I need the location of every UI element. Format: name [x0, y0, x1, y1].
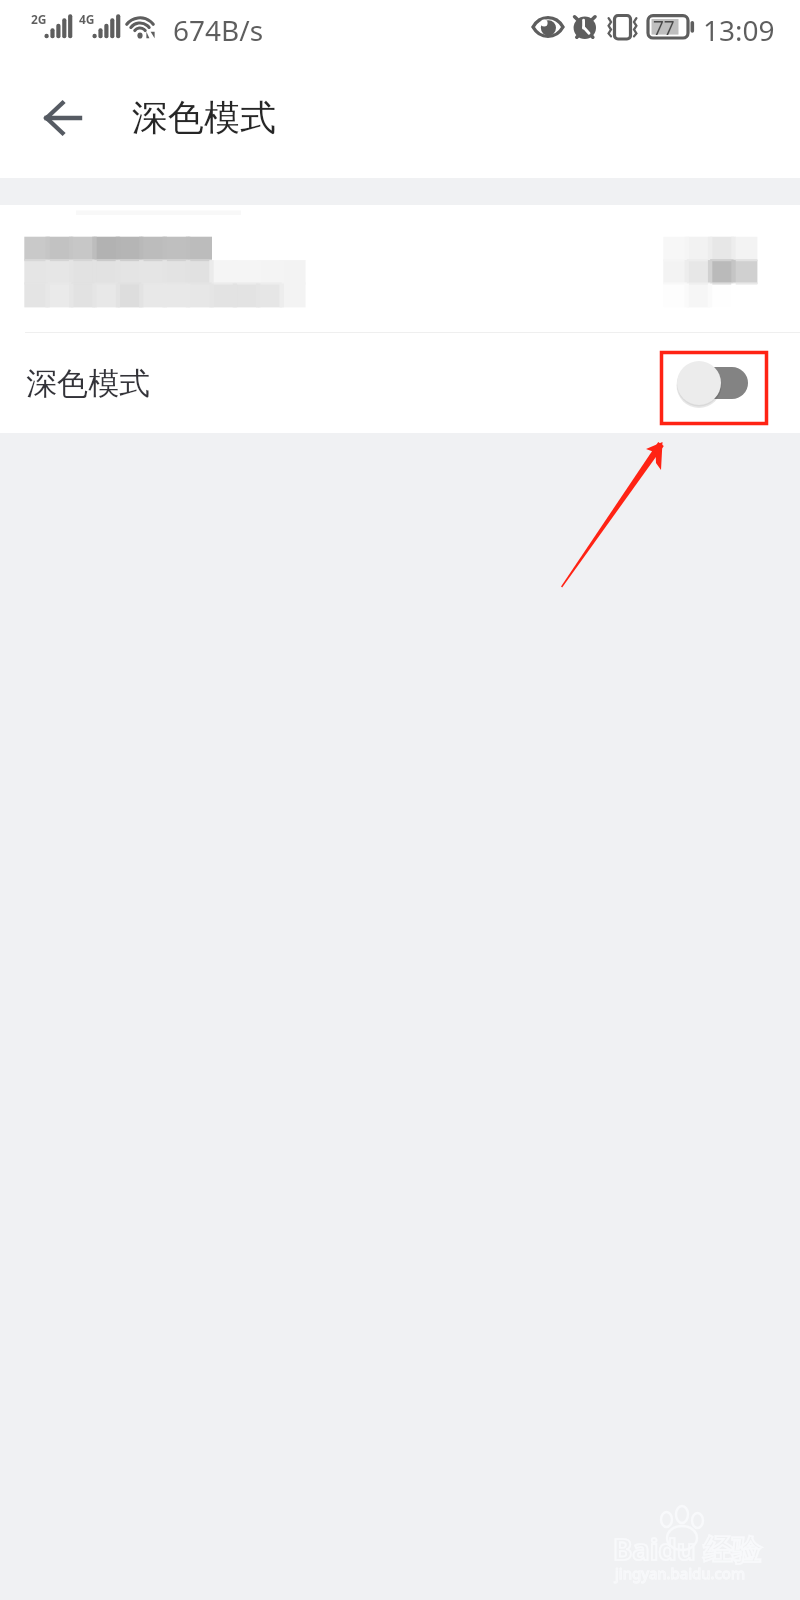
staticText: 2G: [31, 11, 47, 27]
staticText: 674B/s: [173, 11, 264, 49]
staticText: 77: [653, 15, 675, 41]
staticText: 4G: [79, 11, 95, 27]
button[interactable]: 深色模式: [0, 333, 800, 433]
staticText: 深色模式: [26, 364, 150, 403]
staticText: 13:09: [703, 11, 775, 49]
button[interactable]: Dark mode switch, off: [676, 359, 748, 407]
button[interactable]: [0, 205, 800, 332]
button[interactable]: Back: [33, 89, 93, 149]
staticText: Baidu 经验: [613, 1529, 762, 1569]
staticText: 深色模式: [132, 95, 276, 140]
